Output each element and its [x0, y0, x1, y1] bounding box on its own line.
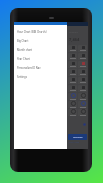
button[interactable]: Settings: [14, 72, 67, 81]
button[interactable]: Option 9: [78, 77, 87, 84]
staticText: Year Chart: [17, 57, 30, 61]
button[interactable]: Option 11: [78, 85, 87, 92]
button[interactable]: Option 12: [68, 93, 77, 100]
button[interactable]: Option 17: [78, 109, 87, 116]
staticText: 7,464: [69, 37, 80, 42]
staticText: multi-page: [69, 141, 80, 144]
staticText: Big Chart: [17, 39, 29, 43]
button[interactable]: Option 13: [78, 93, 87, 100]
button[interactable]: Option 0: [68, 45, 77, 52]
button[interactable]: Option 10: [68, 85, 77, 92]
button[interactable]: Option 14: [68, 101, 77, 108]
button[interactable]: Option 8: [68, 77, 77, 84]
button[interactable]: Option 6: [68, 69, 77, 76]
button[interactable]: Big Chart: [14, 36, 67, 45]
staticText: Month chart: [17, 48, 33, 52]
button[interactable]: Option 7: [78, 69, 87, 76]
staticText: Personalized D Nav: [17, 66, 41, 70]
button[interactable]: Year Chart: [14, 54, 67, 63]
button[interactable]: Option 5: [78, 61, 87, 68]
button[interactable]: Option 3: [78, 53, 87, 60]
staticText: Generate: [73, 136, 83, 139]
button[interactable]: Generate: [68, 134, 87, 140]
button[interactable]: Option 16: [68, 109, 77, 116]
button[interactable]: Month chart: [14, 45, 67, 54]
staticText: summary: [69, 31, 78, 34]
staticText: Hour Chart (BIB Chart/s): [17, 30, 47, 34]
button[interactable]: Hour Chart (BIB Chart/s): [14, 27, 67, 36]
button[interactable]: Option 2: [68, 53, 77, 60]
button[interactable]: Option 1: [78, 45, 87, 52]
button[interactable]: Option 4: [68, 61, 77, 68]
button[interactable]: Refresh: [83, 123, 86, 126]
button[interactable]: Option 15: [78, 101, 87, 108]
button[interactable]: Personalized D Nav: [14, 63, 67, 72]
staticText: Settings: [17, 75, 27, 79]
